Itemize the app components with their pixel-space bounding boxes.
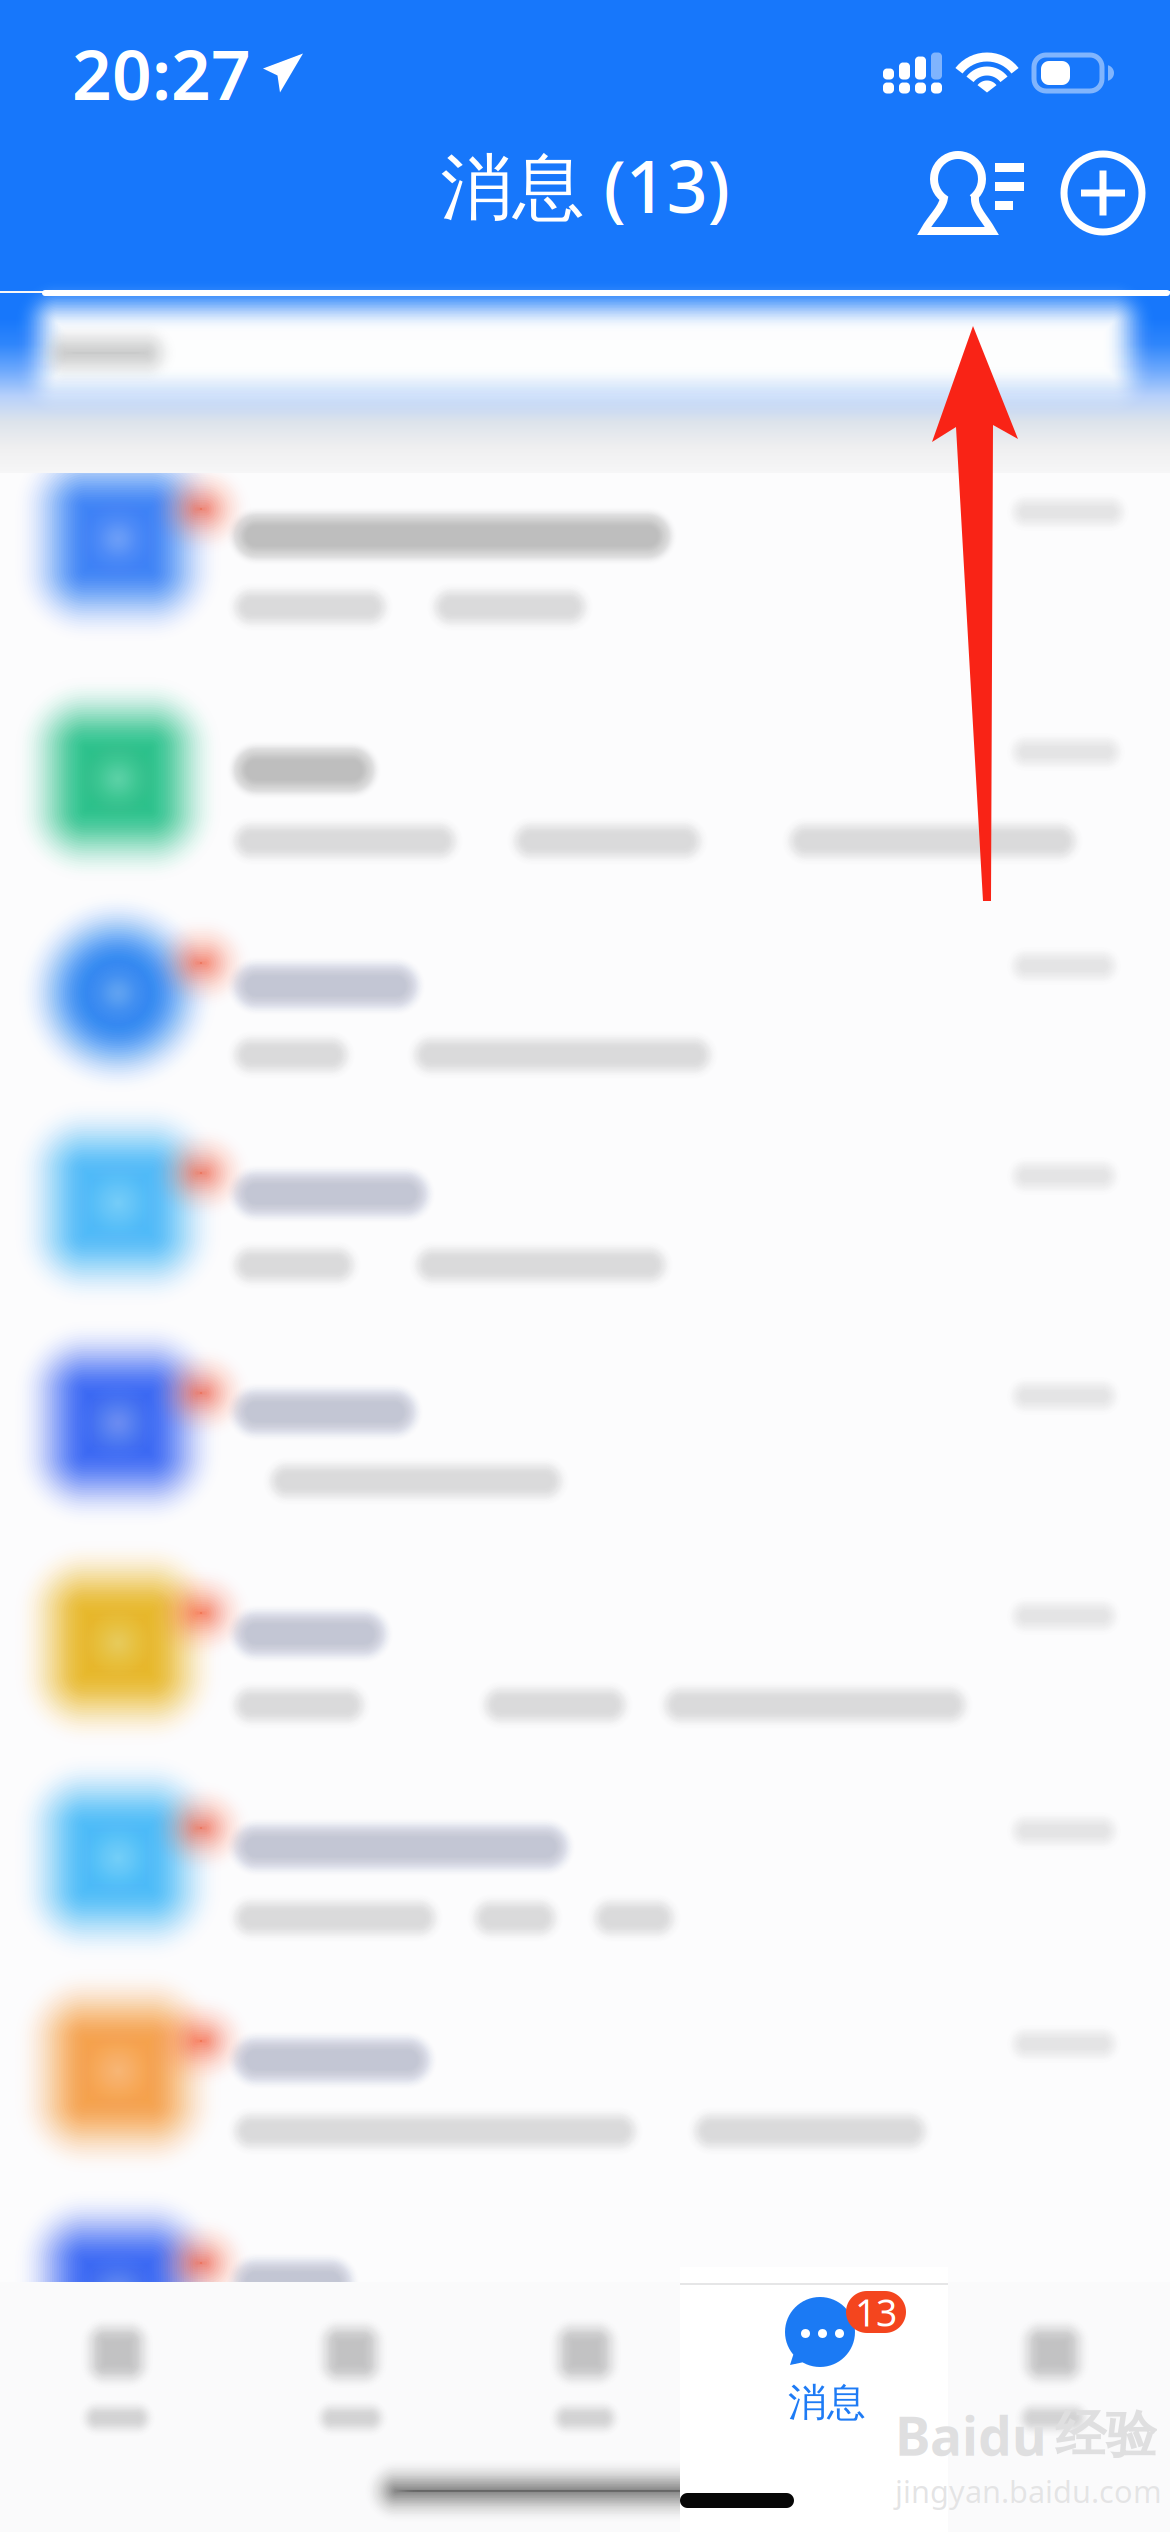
staticText: 20:27 — [72, 27, 251, 119]
staticText: 13 — [855, 2287, 897, 2337]
button[interactable]: 联系人 — [898, 137, 1046, 239]
staticText: Baidu — [895, 2400, 1047, 2470]
staticText: jingyan.baidu.com — [895, 2471, 1162, 2511]
staticText: 消息 — [788, 2379, 866, 2426]
staticText: 经验 — [1055, 2404, 1157, 2466]
button[interactable]: 添加 — [1046, 140, 1156, 236]
staticText: 消息 (13) — [440, 137, 729, 233]
